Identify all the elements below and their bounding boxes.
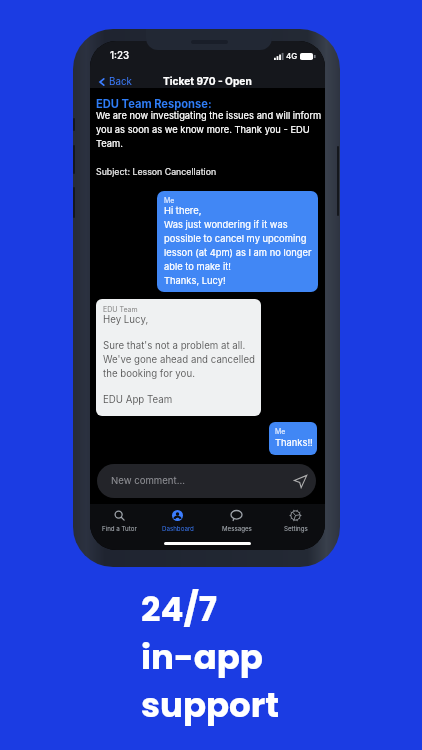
button[interactable]: Find a Tutor	[90, 505, 148, 536]
staticText: Me	[164, 196, 175, 204]
button[interactable]: Me	[269, 422, 317, 455]
staticText: Back	[109, 76, 132, 88]
staticText: Hi there, Was just wondering if it was p…	[164, 205, 312, 286]
staticText: Ticket 970 - Open	[163, 75, 252, 87]
button[interactable]: Messages	[207, 505, 266, 536]
staticText: EDU Team Response:	[96, 97, 212, 110]
staticText: EDU App Team	[103, 394, 173, 406]
staticText: Thanks!!	[275, 437, 313, 448]
staticText: 1:23	[110, 50, 130, 62]
staticText: Subject: Lesson Cancellation	[96, 166, 217, 177]
button[interactable]: Dashboard	[148, 505, 207, 536]
button[interactable]: Settings	[266, 505, 325, 536]
staticText: Hey Lucy,	[103, 314, 149, 326]
other: Send	[294, 475, 307, 488]
button[interactable]: EDU Team	[96, 299, 261, 416]
staticText: Me	[275, 427, 286, 435]
button[interactable]: New comment...	[97, 464, 316, 498]
staticText: 4G	[286, 51, 298, 61]
button[interactable]: Me	[157, 191, 318, 292]
staticText: Settings	[284, 525, 308, 533]
staticText: support	[141, 681, 280, 729]
staticText: 24/7	[141, 585, 218, 633]
staticText: Dashboard	[162, 525, 194, 533]
button[interactable]: Back	[93, 72, 136, 92]
staticText: Messages	[222, 525, 252, 533]
staticText: Sure that's not a problem at all. We've …	[103, 340, 255, 380]
staticText: Find a Tutor	[102, 525, 137, 533]
staticText: in-app	[141, 633, 263, 681]
staticText: We are now investigating the issues and …	[96, 110, 322, 149]
staticText: New comment...	[111, 475, 185, 487]
staticText: EDU Team	[103, 305, 138, 313]
